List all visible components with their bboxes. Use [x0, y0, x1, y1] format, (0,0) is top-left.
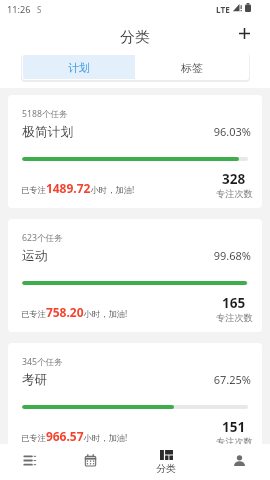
staticText: 专注次数 [216, 188, 253, 200]
staticText: 96.03% [22, 124, 251, 139]
button[interactable]: 623个任务 [8, 219, 262, 332]
button[interactable]: 计划 [23, 55, 135, 79]
staticText: LTE [216, 4, 230, 15]
staticText: 分类 [156, 462, 176, 475]
staticText: 已专注758.20小时，加油! [21, 304, 128, 320]
button[interactable]: Add [228, 17, 260, 49]
staticText: 67.25% [22, 372, 251, 387]
button[interactable]: Profile [215, 444, 263, 480]
button[interactable]: Tasks [6, 444, 54, 480]
staticText: 623个任务 [22, 232, 63, 244]
staticText: 99.68% [22, 248, 251, 263]
staticText: 165 [222, 294, 246, 312]
staticText: 极简计划 [22, 124, 74, 140]
staticText: 运动 [22, 248, 48, 264]
staticText: 已专注966.57小时，加油! [21, 428, 128, 444]
button[interactable]: 5188个任务 [8, 95, 262, 208]
button[interactable]: 345个任务 [8, 343, 262, 456]
staticText: 11:26 [7, 3, 31, 16]
staticText: 5188个任务 [22, 108, 68, 120]
button[interactable]: 分类 [142, 444, 190, 480]
button[interactable]: 标签 [135, 55, 248, 79]
staticText: 分类 [120, 28, 150, 47]
staticText: S [37, 4, 42, 15]
staticText: 345个任务 [22, 356, 63, 368]
staticText: 328 [222, 170, 246, 188]
staticText: 已专注1489.72小时，加油! [21, 180, 135, 196]
button[interactable]: Calendar [66, 444, 114, 480]
staticText: 专注次数 [216, 436, 253, 448]
staticText: 考研 [22, 372, 48, 388]
staticText: 标签 [181, 61, 203, 75]
staticText: 计划 [68, 61, 90, 75]
staticText: 专注次数 [216, 312, 253, 324]
staticText: 151 [222, 418, 246, 436]
